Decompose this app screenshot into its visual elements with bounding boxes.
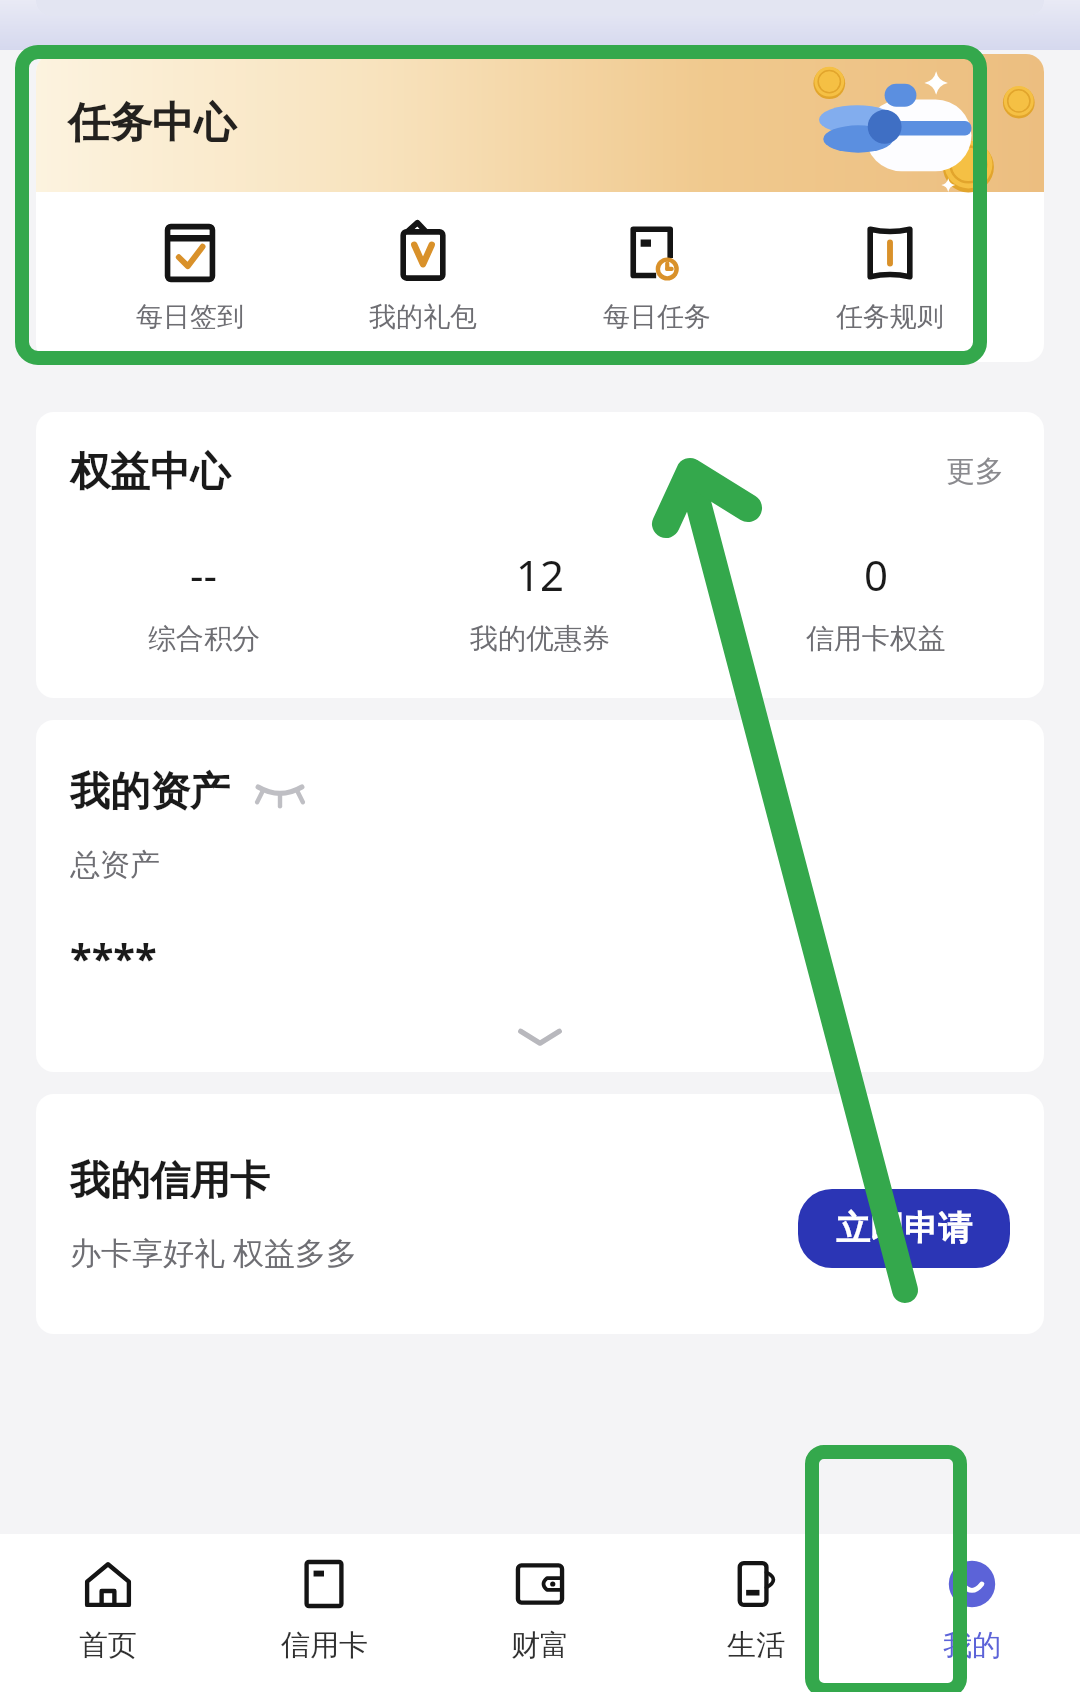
staticText: 任务规则: [836, 300, 944, 334]
button[interactable]: 财富: [432, 1534, 648, 1684]
staticText: 生活: [727, 1627, 785, 1664]
staticText: 立即申请: [836, 1207, 972, 1250]
button[interactable]: 0: [708, 542, 1044, 660]
staticText: 我的优惠券: [470, 621, 610, 656]
staticText: 综合积分: [148, 621, 260, 656]
button[interactable]: 展开: [36, 1010, 1044, 1064]
staticText: 我的信用卡: [70, 1155, 270, 1205]
button[interactable]: 每日签到: [110, 218, 270, 336]
staticText: ****: [70, 930, 157, 984]
staticText: 权益中心: [70, 446, 230, 496]
button[interactable]: 更多: [940, 447, 1010, 496]
staticText: 财富: [511, 1627, 569, 1664]
button[interactable]: 生活: [648, 1534, 864, 1684]
button[interactable]: 我的礼包: [343, 218, 503, 336]
staticText: 每日签到: [136, 300, 244, 334]
staticText: 0: [864, 546, 889, 603]
staticText: 首页: [79, 1627, 137, 1664]
staticText: 12: [516, 546, 565, 603]
staticText: 每日任务: [603, 300, 711, 334]
button[interactable]: 我的: [864, 1534, 1080, 1684]
button[interactable]: 首页: [0, 1534, 216, 1684]
button[interactable]: --: [36, 542, 372, 660]
button[interactable]: 信用卡: [216, 1534, 432, 1684]
staticText: 更多: [946, 453, 1004, 490]
button[interactable]: 12: [372, 542, 708, 660]
staticText: 我的资产: [70, 766, 230, 816]
staticText: 信用卡: [281, 1627, 368, 1664]
button[interactable]: 显示或隐藏资产: [254, 771, 306, 811]
staticText: 总资产: [70, 846, 160, 884]
button[interactable]: 任务规则: [810, 218, 970, 336]
staticText: 信用卡权益: [806, 621, 946, 656]
staticText: 我的礼包: [369, 300, 477, 334]
staticText: --: [190, 546, 218, 603]
button[interactable]: 每日任务: [577, 218, 737, 336]
button[interactable]: 立即申请: [798, 1189, 1010, 1268]
staticText: 任务中心: [68, 97, 236, 150]
staticText: 办卡享好礼 权益多多: [70, 1231, 358, 1273]
staticText: 我的: [943, 1627, 1001, 1664]
